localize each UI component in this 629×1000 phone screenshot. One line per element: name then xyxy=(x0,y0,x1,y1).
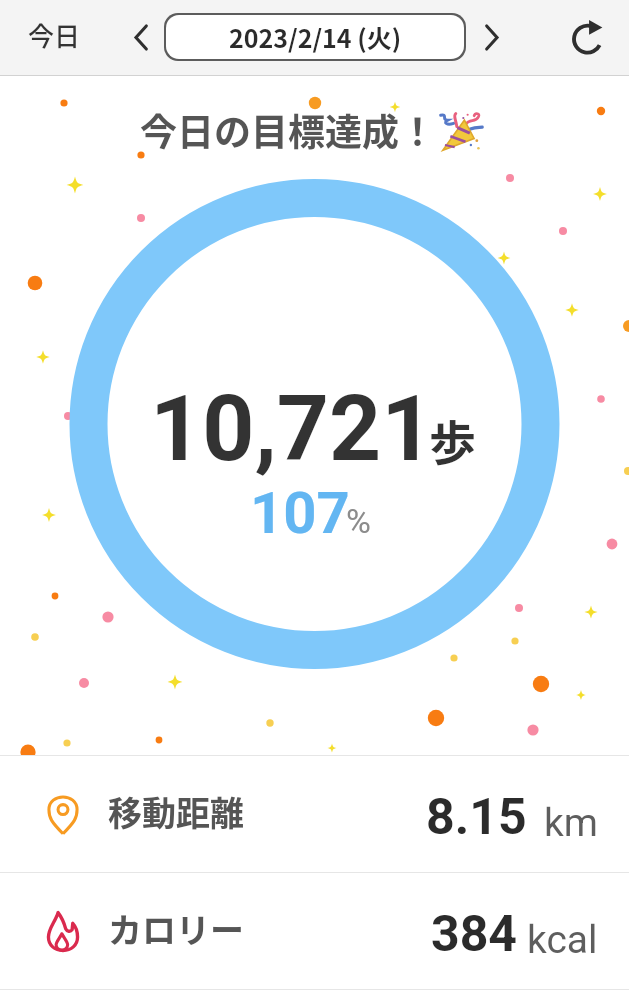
button[interactable]: Calories xyxy=(0,873,629,989)
staticText: カロリー xyxy=(108,904,244,953)
staticText: kcal xyxy=(527,917,598,963)
staticText: 10,721 xyxy=(150,376,434,483)
staticText: 384 xyxy=(431,905,518,964)
staticText: 今日の目標達成！ xyxy=(140,103,436,157)
staticText: 歩 xyxy=(429,405,476,473)
staticText: 2023/2/14 (火) xyxy=(229,19,402,55)
button[interactable]: 今日 xyxy=(28,0,81,72)
staticText: 今日 xyxy=(28,16,81,54)
staticText: km xyxy=(544,800,598,846)
button[interactable]: Refresh xyxy=(560,0,614,75)
other: Distance xyxy=(47,794,79,835)
button[interactable]: 2023/2/14 (火) xyxy=(166,15,464,59)
button[interactable]: Distance xyxy=(0,756,629,872)
button[interactable]: Next day xyxy=(468,0,515,75)
staticText: 8.15 xyxy=(426,788,527,847)
other: Calories xyxy=(47,911,79,952)
button[interactable]: Previous day xyxy=(117,0,164,75)
staticText: 107 xyxy=(250,479,350,547)
staticText: 移動距離 xyxy=(108,787,244,836)
staticText: % xyxy=(346,501,371,541)
